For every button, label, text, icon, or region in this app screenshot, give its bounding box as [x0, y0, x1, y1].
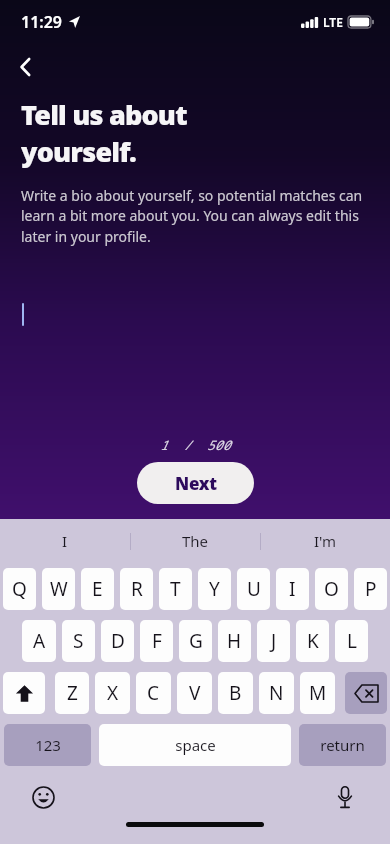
button[interactable]: X — [95, 672, 130, 714]
staticText: P — [365, 576, 377, 602]
staticText: Y — [209, 576, 220, 602]
button[interactable]: D — [101, 620, 134, 662]
staticText: F — [152, 628, 162, 654]
button[interactable]: T — [159, 568, 192, 610]
button[interactable]: B — [218, 672, 253, 714]
button[interactable]: G — [179, 620, 212, 662]
staticText: B — [229, 680, 242, 706]
button[interactable]: Next — [137, 462, 254, 504]
button[interactable]: K — [296, 620, 329, 662]
button[interactable]: E — [81, 568, 114, 610]
button[interactable]: Back — [6, 47, 46, 87]
staticText: The — [182, 531, 209, 551]
staticText: M — [309, 680, 327, 706]
staticText: L — [347, 628, 357, 654]
staticText: G — [189, 628, 203, 654]
staticText: W — [50, 576, 68, 602]
button[interactable]: I'm — [261, 519, 390, 563]
staticText: R — [131, 576, 143, 602]
button[interactable]: L — [335, 620, 368, 662]
button[interactable]: Z — [55, 672, 89, 714]
staticText: U — [247, 576, 261, 602]
staticText: X — [107, 680, 119, 706]
button[interactable]: Shift — [3, 672, 45, 714]
button[interactable]: U — [237, 568, 270, 610]
button[interactable]: Q — [3, 568, 36, 610]
staticText: O — [324, 576, 339, 602]
button[interactable]: F — [140, 620, 173, 662]
button[interactable]: P — [354, 568, 387, 610]
button[interactable]: O — [315, 568, 348, 610]
button[interactable]: A — [22, 620, 56, 662]
button[interactable]: I — [0, 519, 130, 563]
staticText: Z — [67, 680, 78, 706]
staticText: C — [147, 680, 160, 706]
staticText: yourself. — [21, 133, 137, 170]
staticText: N — [269, 680, 284, 706]
staticText: E — [92, 576, 103, 602]
button[interactable]: I — [276, 568, 309, 610]
staticText: Tell us about — [21, 96, 187, 133]
staticText: H — [227, 628, 242, 654]
button[interactable]: 123 — [4, 724, 91, 766]
staticText: T — [170, 576, 181, 602]
button[interactable]: H — [218, 620, 251, 662]
button[interactable]: J — [257, 620, 290, 662]
staticText: 11:29 — [21, 11, 63, 33]
button[interactable]: Y — [198, 568, 231, 610]
staticText: LTE — [323, 14, 343, 30]
button[interactable]: Dictation — [326, 778, 364, 816]
button[interactable]: C — [136, 672, 171, 714]
staticText: S — [73, 628, 84, 654]
staticText: V — [189, 680, 201, 706]
button[interactable]: S — [62, 620, 95, 662]
button[interactable]: M — [300, 672, 335, 714]
staticText: space — [175, 735, 216, 755]
button[interactable]: V — [177, 672, 212, 714]
button[interactable]: return — [299, 724, 386, 766]
staticText: D — [111, 628, 125, 654]
staticText: J — [271, 628, 277, 654]
staticText: return — [320, 735, 365, 755]
staticText: I'm — [314, 531, 337, 551]
staticText: I — [289, 576, 296, 602]
staticText: Q — [12, 576, 27, 602]
button[interactable]: The — [131, 519, 260, 563]
button[interactable]: Emoji — [24, 778, 62, 816]
button[interactable]: R — [120, 568, 153, 610]
staticText: 1 / 500 — [160, 436, 231, 454]
button[interactable]: Backspace — [345, 672, 387, 714]
staticText: Next — [175, 472, 217, 495]
staticText: Write a bio about yourself, so potential… — [21, 186, 368, 247]
staticText: 123 — [35, 735, 61, 755]
button[interactable]: N — [259, 672, 294, 714]
button[interactable]: W — [42, 568, 75, 610]
staticText: K — [307, 628, 319, 654]
staticText: A — [33, 628, 46, 654]
staticText: I — [62, 531, 68, 551]
button[interactable]: space — [99, 724, 291, 766]
